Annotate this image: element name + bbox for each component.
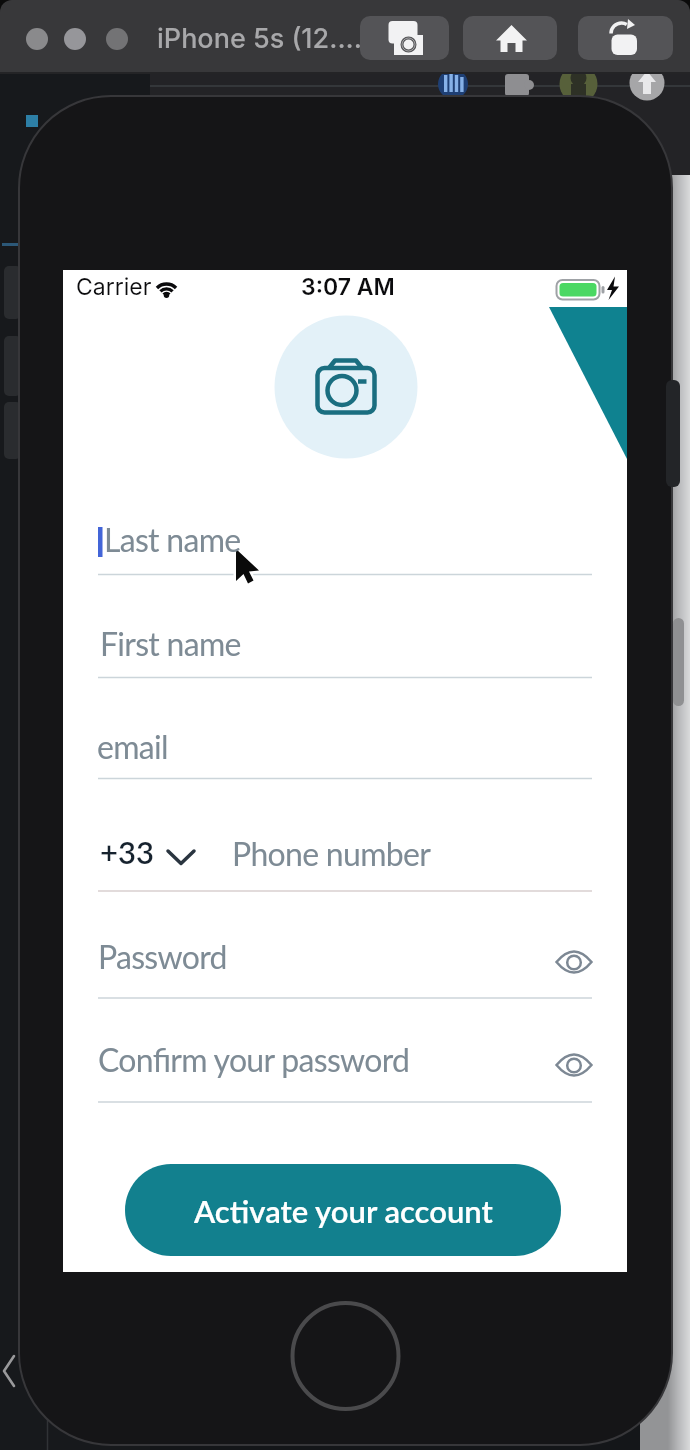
button[interactable]	[95, 832, 200, 894]
button[interactable]	[292, 1302, 399, 1409]
button[interactable]: Activate your account	[125, 1164, 561, 1256]
staticText: Carrier	[76, 273, 152, 301]
button[interactable]	[550, 1042, 598, 1090]
button[interactable]	[578, 16, 673, 60]
staticText: 3:07 AM	[301, 273, 395, 301]
button[interactable]	[95, 619, 592, 681]
button[interactable]	[95, 938, 535, 1000]
button[interactable]	[463, 16, 557, 60]
staticText: Activate your account	[194, 1192, 493, 1229]
button[interactable]	[95, 720, 592, 782]
button[interactable]	[95, 1042, 535, 1104]
staticText: Confirm your password	[98, 1040, 410, 1078]
staticText: iPhone 5s (12....	[157, 22, 362, 55]
button[interactable]	[275, 316, 418, 459]
staticText: First name	[100, 624, 241, 662]
staticText: Phone number	[232, 834, 431, 872]
button[interactable]	[95, 516, 592, 578]
staticText: +33	[100, 833, 154, 870]
button[interactable]	[360, 16, 449, 60]
staticText: Last name	[104, 520, 241, 558]
button[interactable]	[210, 832, 592, 894]
button[interactable]	[550, 938, 598, 986]
staticText: email	[97, 727, 168, 765]
staticText: Password	[98, 937, 227, 975]
